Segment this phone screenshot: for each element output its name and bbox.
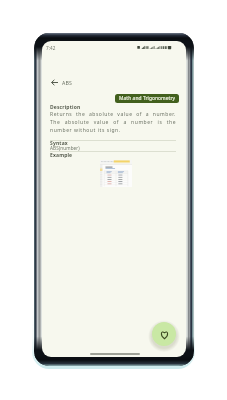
staticText: Syntax: [50, 140, 68, 147]
staticText: Description: [50, 104, 81, 111]
button[interactable]: ABS: [51, 75, 88, 90]
staticText: Returns the absolute value of a number. …: [50, 111, 176, 134]
staticText: Example: [50, 152, 73, 159]
button[interactable]: Math and Trigonometry: [115, 94, 179, 103]
staticText: ABS: [62, 79, 73, 86]
staticText: Math and Trigonometry: [119, 95, 176, 102]
staticText: ABS(number): [50, 145, 80, 151]
staticText: 7:42: [46, 45, 56, 51]
button[interactable]: Add to favorites: [152, 322, 176, 346]
